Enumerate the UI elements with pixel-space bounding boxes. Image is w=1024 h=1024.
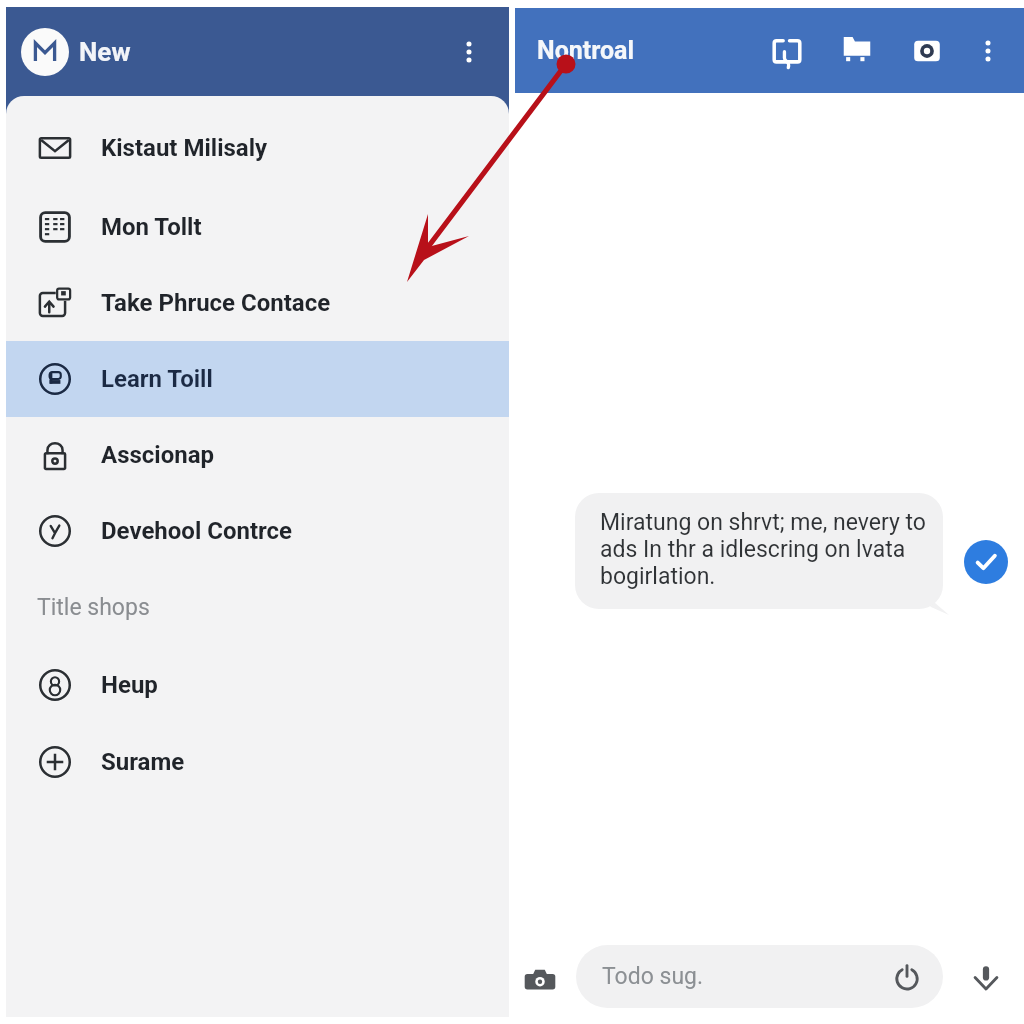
staticText: Miratung on shrvt; me, nevery to ads In … xyxy=(600,509,926,590)
button[interactable]: Voice input xyxy=(959,951,1013,1005)
staticText: Devehool Contrce xyxy=(101,517,293,545)
staticText: Todo sug. xyxy=(602,963,704,990)
staticText: Asscionap xyxy=(101,441,214,469)
button[interactable]: Camera xyxy=(513,953,567,1007)
button[interactable]: More options xyxy=(445,28,493,76)
staticText: Kistaut Milisaly xyxy=(101,134,268,162)
staticText: Learn Toill xyxy=(101,365,213,393)
button[interactable]: Todo sug. xyxy=(576,945,943,1008)
button[interactable]: Cart xyxy=(833,27,881,75)
button[interactable]: Miratung on shrvt; me, nevery to ads In … xyxy=(575,493,943,609)
button[interactable]: Devehool Contrce xyxy=(6,493,509,569)
button[interactable]: Power xyxy=(885,955,929,999)
button[interactable]: Take Phruce Contace xyxy=(6,265,509,341)
button[interactable]: Camera xyxy=(903,27,951,75)
button[interactable]: Sent xyxy=(964,540,1008,584)
staticText: Take Phruce Contace xyxy=(101,289,331,317)
button[interactable]: Mon Tollt xyxy=(6,189,509,265)
staticText: New xyxy=(79,37,131,67)
button[interactable]: Surame xyxy=(6,724,509,800)
staticText: Nontroal xyxy=(537,36,635,65)
button[interactable]: More options xyxy=(966,29,1010,73)
button[interactable]: Screen share xyxy=(763,27,811,75)
button[interactable]: Kistaut Milisaly xyxy=(6,107,509,189)
button[interactable]: Asscionap xyxy=(6,417,509,493)
button[interactable]: Learn Toill xyxy=(6,341,509,417)
button[interactable]: Heup xyxy=(6,646,509,724)
staticText: Mon Tollt xyxy=(101,213,202,241)
staticText: Title shops xyxy=(37,594,150,621)
staticText: Heup xyxy=(101,671,158,699)
button[interactable]: Account xyxy=(21,28,69,76)
staticText: Surame xyxy=(101,748,185,776)
